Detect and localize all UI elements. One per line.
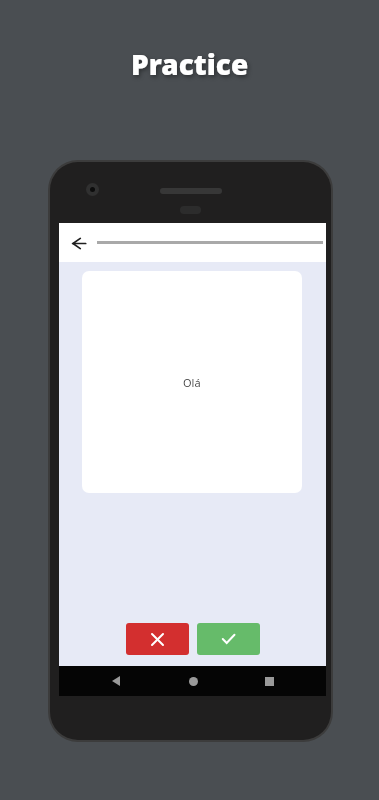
button[interactable]: Olá: [82, 271, 302, 493]
button[interactable]: Recent apps: [249, 666, 289, 696]
staticText: Olá: [183, 375, 201, 390]
button[interactable]: Incorrect: [126, 623, 189, 655]
button[interactable]: Home: [173, 666, 213, 696]
button[interactable]: Correct: [197, 623, 260, 655]
staticText: Practice: [131, 45, 249, 83]
button[interactable]: Navigate up: [59, 224, 97, 262]
button[interactable]: Back: [96, 666, 136, 696]
